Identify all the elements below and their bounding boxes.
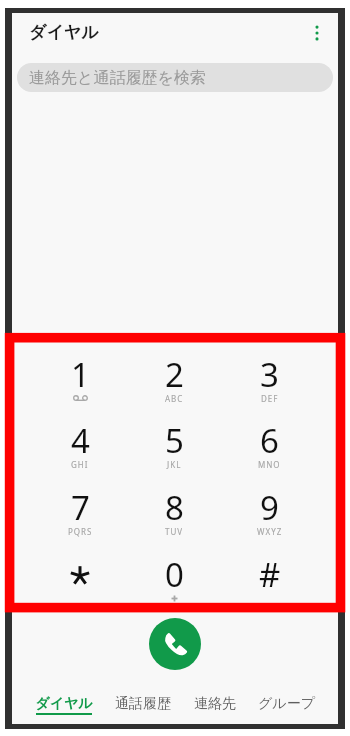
staticText: 1 xyxy=(71,352,90,397)
staticText: MNO xyxy=(258,459,281,470)
button[interactable]: グループ xyxy=(258,685,315,719)
staticText: JKL xyxy=(167,459,182,470)
button[interactable]: 通話履歴 xyxy=(115,685,171,719)
staticText: GHI xyxy=(71,459,89,470)
button[interactable]: 7 xyxy=(33,474,127,541)
staticText: # xyxy=(259,552,281,597)
staticText: グループ xyxy=(258,695,315,713)
button[interactable]: 9 xyxy=(222,474,317,541)
staticText: PQRS xyxy=(68,526,93,537)
staticText: 連絡先と通話履歴を検索 xyxy=(29,68,206,88)
button[interactable]: 5 xyxy=(127,407,222,474)
button[interactable]: 1 xyxy=(33,341,127,407)
button[interactable]: 3 xyxy=(222,341,317,407)
button[interactable]: 2 xyxy=(127,341,222,407)
button[interactable]: # xyxy=(222,541,317,608)
button[interactable]: More options xyxy=(302,18,332,48)
button[interactable]: 4 xyxy=(33,407,127,474)
staticText: 3 xyxy=(260,352,279,397)
staticText: DEF xyxy=(261,393,279,404)
button[interactable]: 連絡先 xyxy=(194,685,236,719)
staticText: 4 xyxy=(71,418,90,463)
button[interactable]: 連絡先と通話履歴を検索 xyxy=(17,63,333,92)
staticText: 8 xyxy=(165,485,184,530)
button[interactable]: 0 xyxy=(127,541,222,608)
staticText: 5 xyxy=(165,418,184,463)
staticText: TUV xyxy=(165,526,184,537)
button[interactable]: ダイヤル xyxy=(35,685,93,719)
staticText: ダイヤル xyxy=(29,22,99,43)
button[interactable]: 8 xyxy=(127,474,222,541)
staticText: WXYZ xyxy=(257,526,283,537)
staticText: 9 xyxy=(260,485,279,530)
staticText: 2 xyxy=(165,352,184,397)
button[interactable] xyxy=(33,541,127,608)
staticText: 7 xyxy=(71,485,90,530)
staticText: 通話履歴 xyxy=(115,695,171,713)
staticText: 6 xyxy=(260,418,279,463)
staticText: ABC xyxy=(165,393,184,404)
staticText: 0 xyxy=(165,552,184,597)
button[interactable]: Call xyxy=(149,618,201,670)
button[interactable]: 6 xyxy=(222,407,317,474)
staticText: ダイヤル xyxy=(35,695,93,713)
staticText: 連絡先 xyxy=(194,695,236,713)
